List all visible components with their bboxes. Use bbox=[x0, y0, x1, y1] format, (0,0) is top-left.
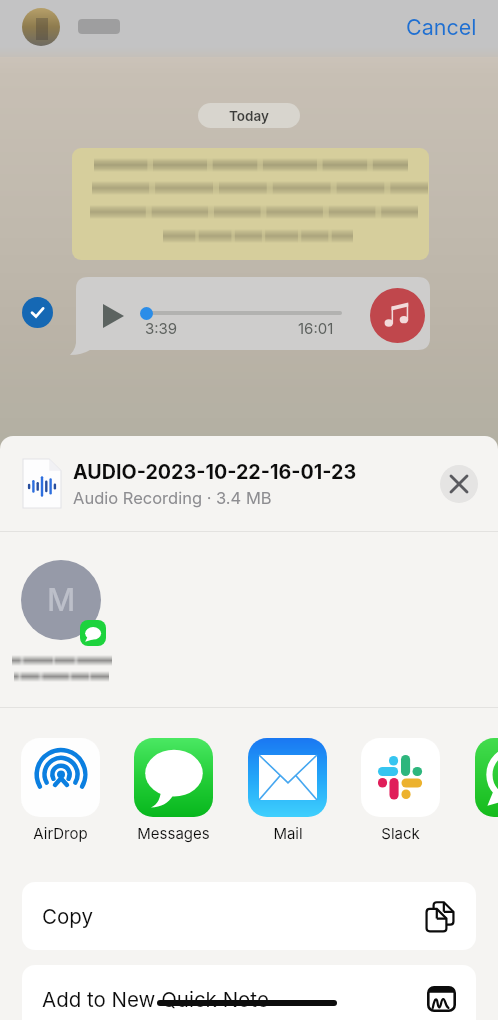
other: Copy bbox=[424, 900, 456, 932]
staticText: AirDrop bbox=[33, 824, 88, 842]
button[interactable]: AUDIO-2023-10-22-16-01-23 bbox=[0, 436, 498, 531]
button[interactable]: Messages bbox=[132, 738, 215, 842]
staticText: 3:39 bbox=[145, 319, 178, 337]
staticText: Copy bbox=[42, 904, 93, 929]
button[interactable]: Cancel bbox=[390, 2, 493, 52]
staticText: M bbox=[47, 581, 76, 619]
button[interactable]: AirDrop bbox=[19, 738, 102, 842]
other: Add to New Quick Note bbox=[427, 986, 456, 1012]
staticText: Messages bbox=[137, 824, 210, 842]
staticText: Audio Recording · 3.4 MB bbox=[73, 488, 272, 508]
staticText: Mail bbox=[273, 824, 303, 842]
button[interactable]: Slack bbox=[359, 738, 442, 842]
button[interactable]: Copy bbox=[22, 882, 476, 950]
staticText: 16:01 bbox=[298, 319, 334, 337]
staticText: Slack bbox=[381, 824, 420, 842]
button[interactable]: WA bbox=[473, 738, 498, 842]
button[interactable]: Add to New Quick Note bbox=[22, 965, 476, 1020]
button[interactable]: Mail bbox=[246, 738, 329, 842]
staticText: Add to New Quick Note bbox=[42, 987, 269, 1012]
button[interactable]: Close bbox=[440, 465, 478, 503]
staticText: AUDIO-2023-10-22-16-01-23 bbox=[73, 460, 357, 484]
staticText: Cancel bbox=[406, 14, 477, 40]
staticText: Today bbox=[229, 108, 269, 124]
button[interactable]: M bbox=[11, 560, 112, 682]
